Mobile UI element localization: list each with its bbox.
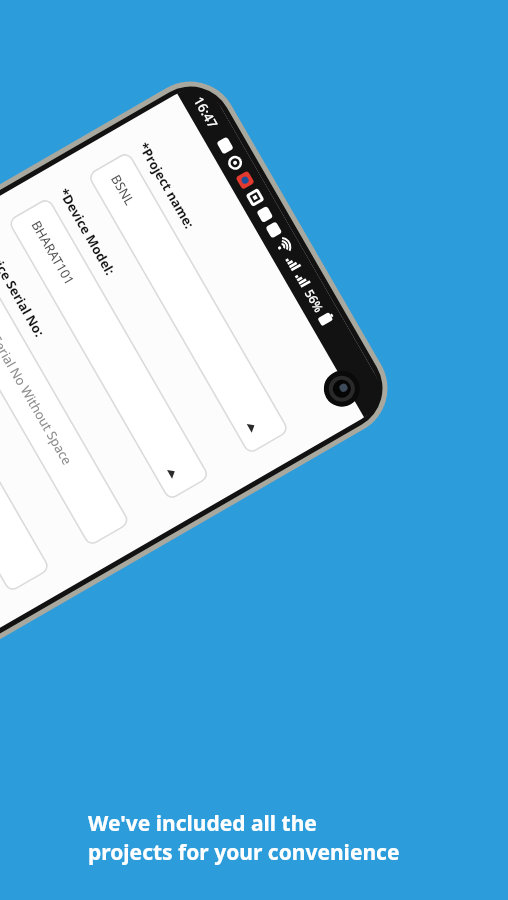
staticText: We've included all the bbox=[88, 809, 317, 838]
button[interactable]: We've included all the bbox=[88, 809, 498, 867]
staticText: projects for your convenience bbox=[88, 838, 400, 867]
